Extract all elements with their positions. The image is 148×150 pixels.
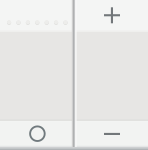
- button[interactable]: Power: [0, 121, 73, 146]
- button[interactable]: Decrease brightness: [74, 121, 148, 146]
- button[interactable]: Increase brightness: [74, 0, 148, 31]
